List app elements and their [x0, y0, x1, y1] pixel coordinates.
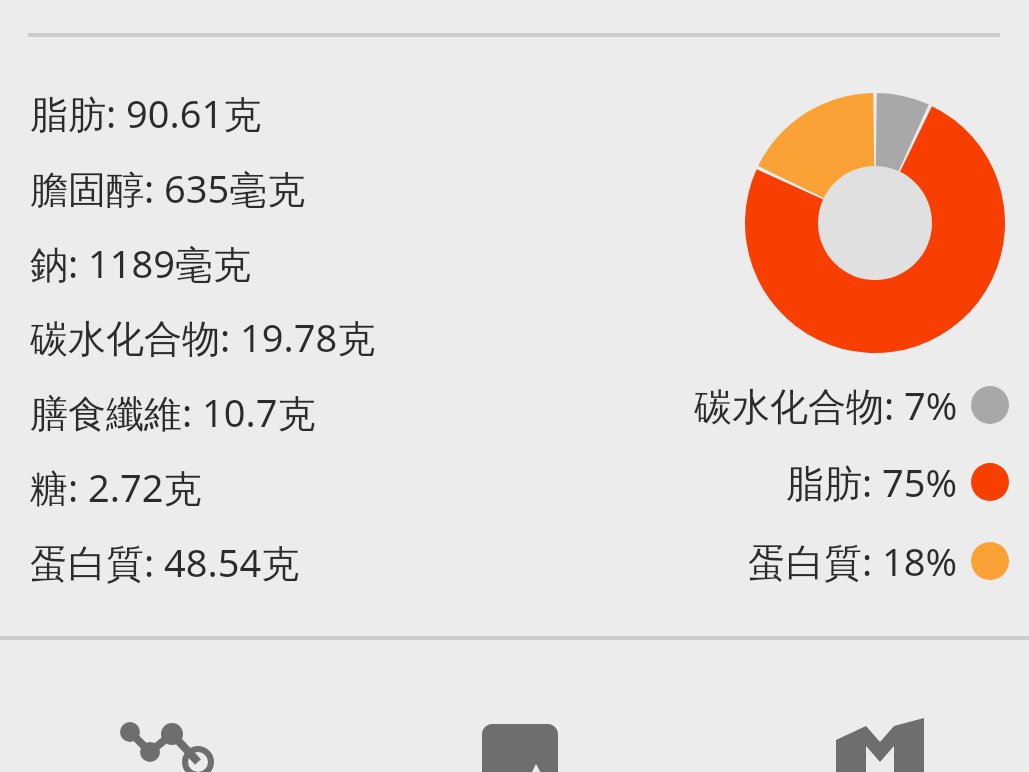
button[interactable]: Statistics [0, 640, 343, 772]
button[interactable]: Map [686, 640, 1029, 772]
button[interactable]: Photos [343, 640, 686, 772]
